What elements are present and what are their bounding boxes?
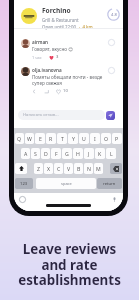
staticText: T: [61, 135, 64, 142]
staticText: J: [88, 150, 90, 157]
staticText: V: [67, 165, 71, 172]
staticText: Grill & Restaurant: [42, 17, 79, 23]
button[interactable]: D: [41, 148, 50, 159]
staticText: G: [65, 150, 69, 157]
button[interactable]: Z: [34, 163, 43, 174]
button[interactable]: Shift: [15, 163, 27, 174]
button[interactable]: A: [21, 148, 30, 159]
staticText: A: [24, 150, 28, 157]
staticText: Q: [17, 135, 22, 142]
button[interactable]: H: [73, 148, 83, 159]
staticText: 1 час: [32, 55, 42, 60]
button[interactable]: Send: [106, 111, 115, 120]
staticText: B: [77, 165, 81, 172]
button[interactable]: T: [57, 133, 67, 144]
button[interactable]: S: [31, 148, 40, 159]
button[interactable]: Y: [68, 133, 78, 144]
staticText: S: [34, 150, 37, 157]
button[interactable]: Numbers: [15, 178, 33, 189]
staticText: Написать отзыв...: [23, 112, 59, 118]
staticText: Y: [72, 135, 75, 142]
staticText: Z: [37, 165, 40, 172]
button[interactable]: G: [62, 148, 72, 159]
button[interactable]: V: [64, 163, 73, 174]
button[interactable]: Emoji: [19, 196, 26, 203]
button[interactable]: More options: [108, 67, 115, 74]
button[interactable]: U: [79, 133, 89, 144]
staticText: L: [110, 150, 113, 157]
staticText: 3: [56, 54, 59, 60]
button[interactable]: Написать отзыв...: [18, 110, 105, 120]
button[interactable]: K: [95, 148, 105, 159]
staticText: Open until 22:00: [42, 24, 77, 30]
staticText: C: [57, 165, 61, 172]
button[interactable]: R: [46, 133, 56, 144]
staticText: Forchino: [42, 6, 71, 15]
button[interactable]: C: [54, 163, 63, 174]
staticText: I: [94, 135, 96, 142]
button[interactable]: E: [35, 133, 45, 144]
staticText: N: [87, 165, 91, 172]
staticText: H: [76, 150, 80, 157]
button[interactable]: [21, 8, 37, 24]
button[interactable]: I: [90, 133, 100, 144]
staticText: X: [47, 165, 51, 172]
staticText: M: [96, 165, 101, 172]
button[interactable]: olja.ivanovna: [14, 65, 123, 95]
staticText: airman: [32, 39, 49, 45]
button[interactable]: J: [84, 148, 94, 159]
staticText: F: [55, 150, 58, 157]
staticText: 4.8: [111, 12, 117, 18]
staticText: E: [39, 135, 42, 142]
button[interactable]: Q: [15, 133, 24, 144]
button[interactable]: W: [25, 133, 34, 144]
button[interactable]: Backspace: [110, 163, 122, 174]
button[interactable]: F: [51, 148, 61, 159]
button[interactable]: M: [94, 163, 103, 174]
button[interactable]: space: [36, 178, 96, 189]
button[interactable]: N: [84, 163, 93, 174]
staticText: Leave reviews and rate establishments: [0, 240, 139, 289]
staticText: Говорят, вкусно 😊: [32, 46, 106, 52]
staticText: 123: [20, 181, 28, 187]
staticText: P: [115, 135, 119, 142]
staticText: U: [82, 135, 86, 142]
staticText: K: [98, 150, 102, 157]
staticText: 10: [63, 88, 68, 94]
staticText: olja.ivanovna: [32, 67, 62, 73]
button[interactable]: Return: [97, 178, 122, 189]
staticText: O: [104, 135, 109, 142]
button[interactable]: airman: [14, 37, 123, 67]
staticText: return: [103, 181, 116, 187]
button[interactable]: More options: [108, 39, 115, 46]
button[interactable]: B: [74, 163, 83, 174]
button[interactable]: Rating: [107, 8, 120, 21]
staticText: Помяты обещали почти - везде супер свежа…: [32, 74, 106, 86]
staticText: W: [27, 135, 32, 142]
staticText: R: [49, 135, 53, 142]
button[interactable]: Voice input: [111, 196, 118, 203]
button[interactable]: P: [112, 133, 122, 144]
button[interactable]: X: [44, 163, 53, 174]
staticText: space: [61, 181, 72, 186]
staticText: · 4 km: [79, 24, 93, 30]
staticText: D: [44, 150, 48, 157]
button[interactable]: O: [101, 133, 111, 144]
button[interactable]: L: [106, 148, 116, 159]
